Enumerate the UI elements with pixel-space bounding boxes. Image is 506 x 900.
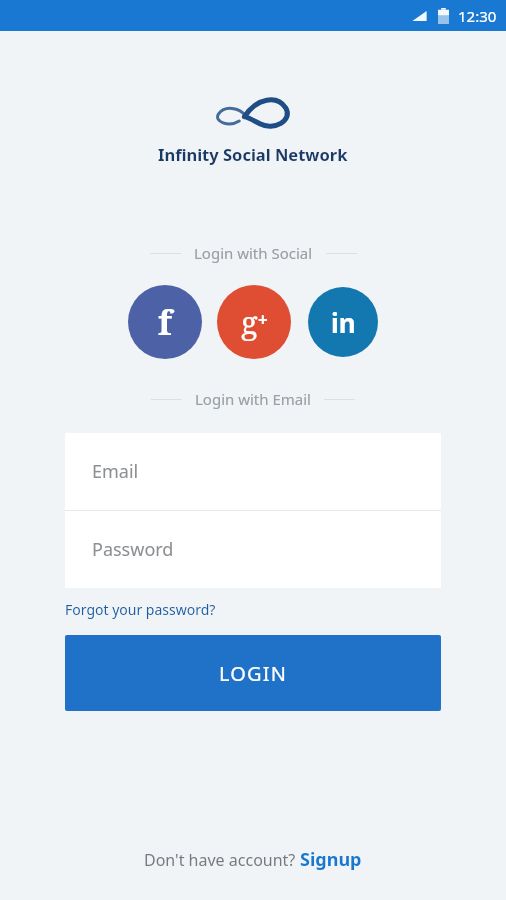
staticText: Login with Social [194, 243, 313, 263]
button[interactable]: Login with Facebook [128, 285, 202, 359]
button[interactable]: LOGIN [65, 635, 441, 711]
button[interactable]: Login with LinkedIn [308, 287, 378, 357]
button[interactable]: Email [65, 433, 441, 510]
staticText: Forgot your password? [65, 600, 216, 619]
button[interactable]: Forgot your password? [65, 600, 216, 619]
staticText: g [241, 301, 258, 343]
staticText: Signup [300, 847, 362, 872]
staticText: + [258, 308, 268, 331]
staticText: Don't have account? [144, 849, 300, 871]
staticText: Infinity Social Network [158, 143, 348, 165]
staticText: Password [92, 537, 174, 562]
staticText: 12:30 [458, 6, 497, 26]
staticText: LOGIN [219, 660, 288, 687]
staticText: in [331, 305, 356, 340]
staticText: f [158, 299, 172, 345]
button[interactable]: Don't have account? [144, 847, 362, 872]
button[interactable]: Password [65, 511, 441, 588]
button[interactable]: Login with Google Plus [217, 285, 291, 359]
staticText: Login with Email [195, 389, 311, 409]
staticText: Email [92, 459, 139, 484]
